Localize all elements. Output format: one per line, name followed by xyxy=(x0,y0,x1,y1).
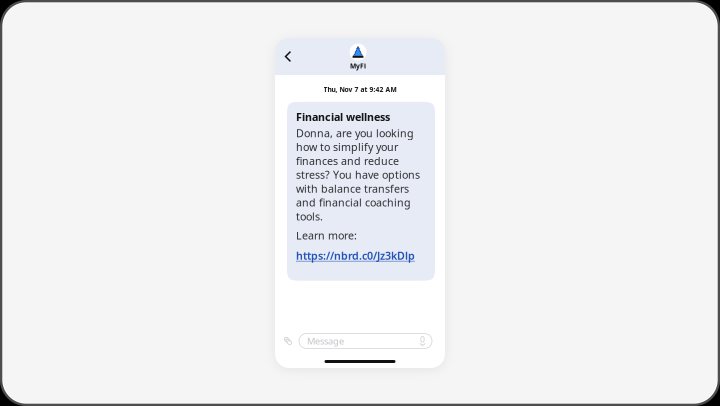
staticText: Message xyxy=(307,335,344,347)
button[interactable]: Dictate xyxy=(417,333,428,348)
button[interactable]: Attach file xyxy=(282,333,294,349)
staticText: https://nbrd.c0/Jz3kDlp xyxy=(296,248,415,263)
staticText: Learn more: xyxy=(296,228,357,243)
staticText: Financial wellness xyxy=(296,110,390,124)
button[interactable]: Back xyxy=(275,40,301,72)
staticText: Thu, Nov 7 at 9:42 AM xyxy=(323,85,396,94)
staticText: MyFi xyxy=(350,62,366,70)
staticText: Donna, are you looking how to simplify y… xyxy=(296,126,420,223)
button[interactable]: https://nbrd.c0/Jz3kDlp xyxy=(296,242,415,263)
